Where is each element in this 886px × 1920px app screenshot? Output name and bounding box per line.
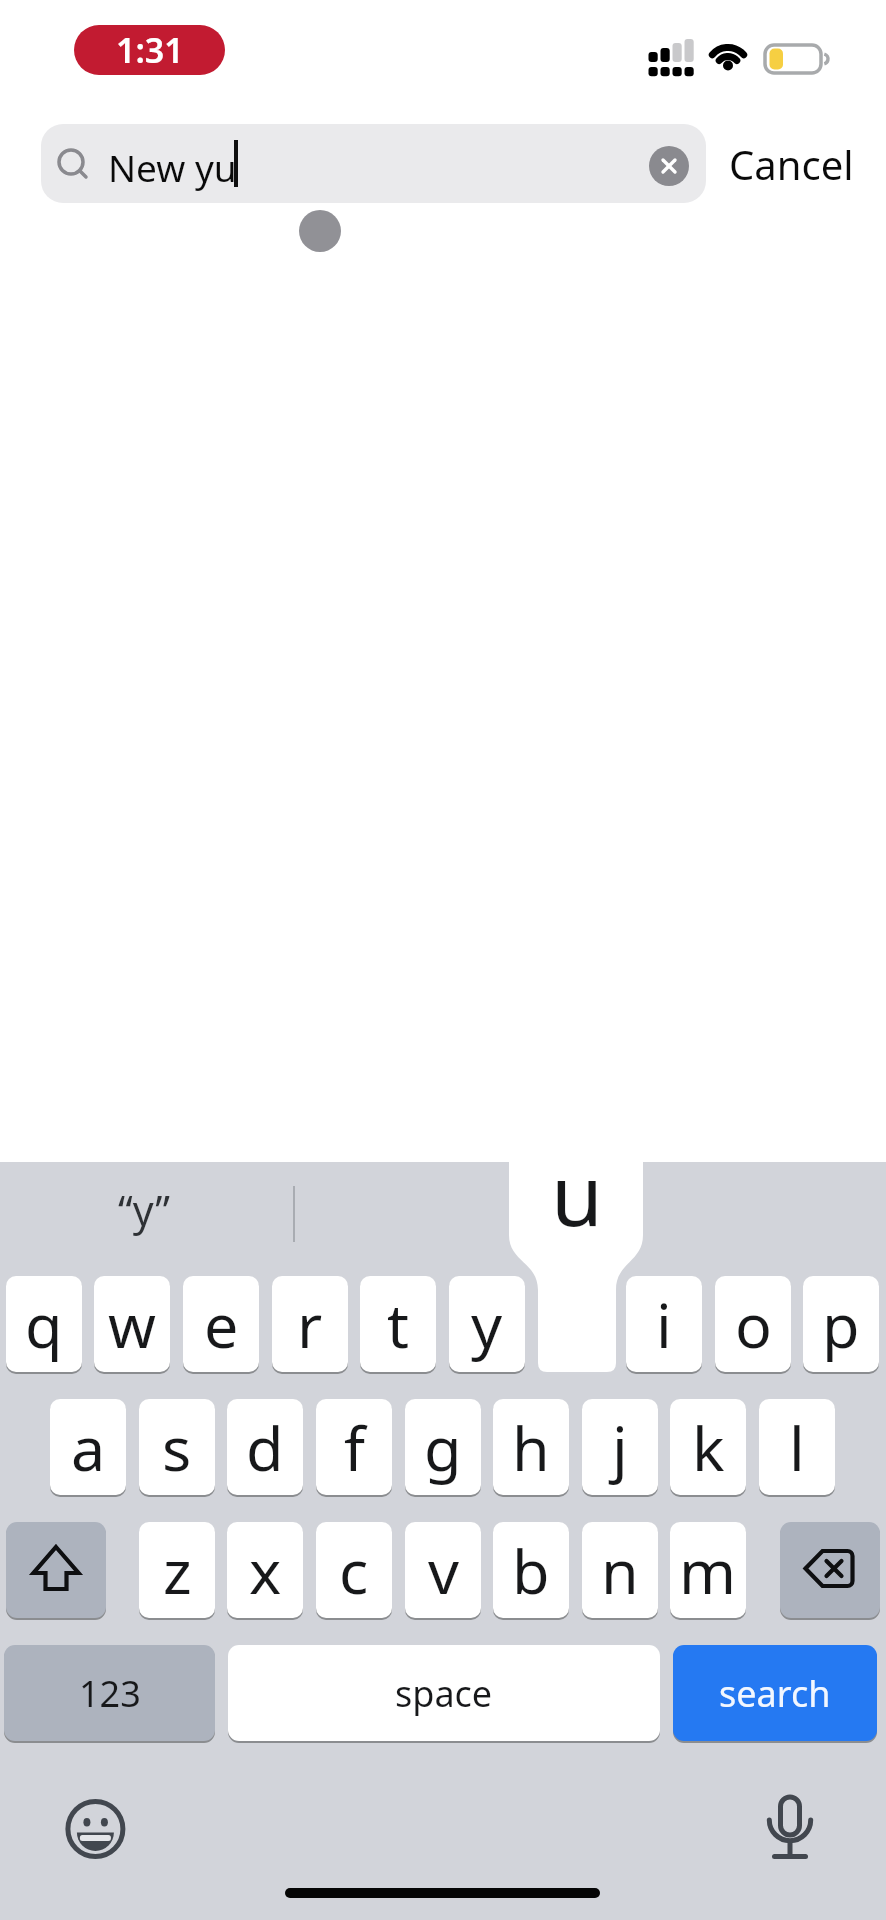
button[interactable]: c (316, 1522, 392, 1618)
button[interactable]: z (139, 1522, 215, 1618)
staticText: j (612, 1406, 628, 1489)
button[interactable]: m (670, 1522, 746, 1618)
staticText: m (679, 1529, 737, 1612)
button[interactable]: r (272, 1276, 348, 1372)
staticText: f (344, 1406, 365, 1489)
staticText: h (512, 1406, 550, 1489)
button[interactable]: 1:31 (74, 25, 225, 75)
button[interactable]: o (715, 1276, 791, 1372)
button[interactable]: v (405, 1522, 481, 1618)
staticText: g (424, 1406, 462, 1489)
staticText: Cancel (729, 137, 854, 191)
staticText: p (822, 1283, 860, 1366)
staticText: “y” (118, 1182, 170, 1238)
button[interactable]: y (449, 1276, 525, 1372)
button[interactable]: w (94, 1276, 170, 1372)
button[interactable]: p (803, 1276, 879, 1372)
button[interactable]: search (673, 1645, 877, 1741)
staticText: n (601, 1529, 639, 1612)
staticText: o (735, 1283, 772, 1366)
button[interactable]: d (227, 1399, 303, 1495)
button[interactable]: j (582, 1399, 658, 1495)
staticText: e (204, 1283, 239, 1366)
button[interactable]: Cancel (726, 136, 856, 192)
staticText: k (692, 1406, 725, 1489)
staticText: l (789, 1406, 805, 1489)
button[interactable]: k (670, 1399, 746, 1495)
button[interactable]: n (582, 1522, 658, 1618)
staticText: y (471, 1283, 503, 1366)
button[interactable]: x (227, 1522, 303, 1618)
staticText: 1:31 (116, 27, 184, 73)
staticText: t (387, 1283, 410, 1366)
staticText: d (246, 1406, 284, 1489)
button[interactable]: q (6, 1276, 82, 1372)
staticText: u (551, 1136, 603, 1250)
staticText: space (395, 1669, 493, 1718)
button[interactable]: t (360, 1276, 436, 1372)
staticText: New yu (108, 142, 237, 192)
button[interactable] (649, 146, 689, 186)
staticText: i (656, 1283, 672, 1366)
button[interactable]: g (405, 1399, 481, 1495)
staticText: x (249, 1529, 282, 1612)
button[interactable] (780, 1522, 880, 1618)
button[interactable]: New yu (41, 124, 706, 203)
staticText: a (71, 1406, 106, 1489)
button[interactable]: l (759, 1399, 835, 1495)
button[interactable]: h (493, 1399, 569, 1495)
staticText: 123 (79, 1669, 141, 1718)
staticText: r (297, 1283, 323, 1366)
button[interactable] (6, 1522, 106, 1618)
button[interactable]: i (626, 1276, 702, 1372)
button[interactable]: space (228, 1645, 660, 1741)
button[interactable]: 123 (4, 1645, 215, 1741)
staticText: search (719, 1669, 831, 1718)
button[interactable]: f (316, 1399, 392, 1495)
staticText: z (163, 1529, 192, 1612)
button[interactable]: s (139, 1399, 215, 1495)
button[interactable]: b (493, 1522, 569, 1618)
staticText: b (512, 1529, 550, 1612)
staticText: q (25, 1283, 63, 1366)
staticText: w (108, 1283, 156, 1366)
button[interactable]: e (183, 1276, 259, 1372)
button[interactable]: a (50, 1399, 126, 1495)
staticText: v (428, 1529, 459, 1612)
staticText: c (339, 1529, 369, 1612)
staticText: s (162, 1406, 192, 1489)
